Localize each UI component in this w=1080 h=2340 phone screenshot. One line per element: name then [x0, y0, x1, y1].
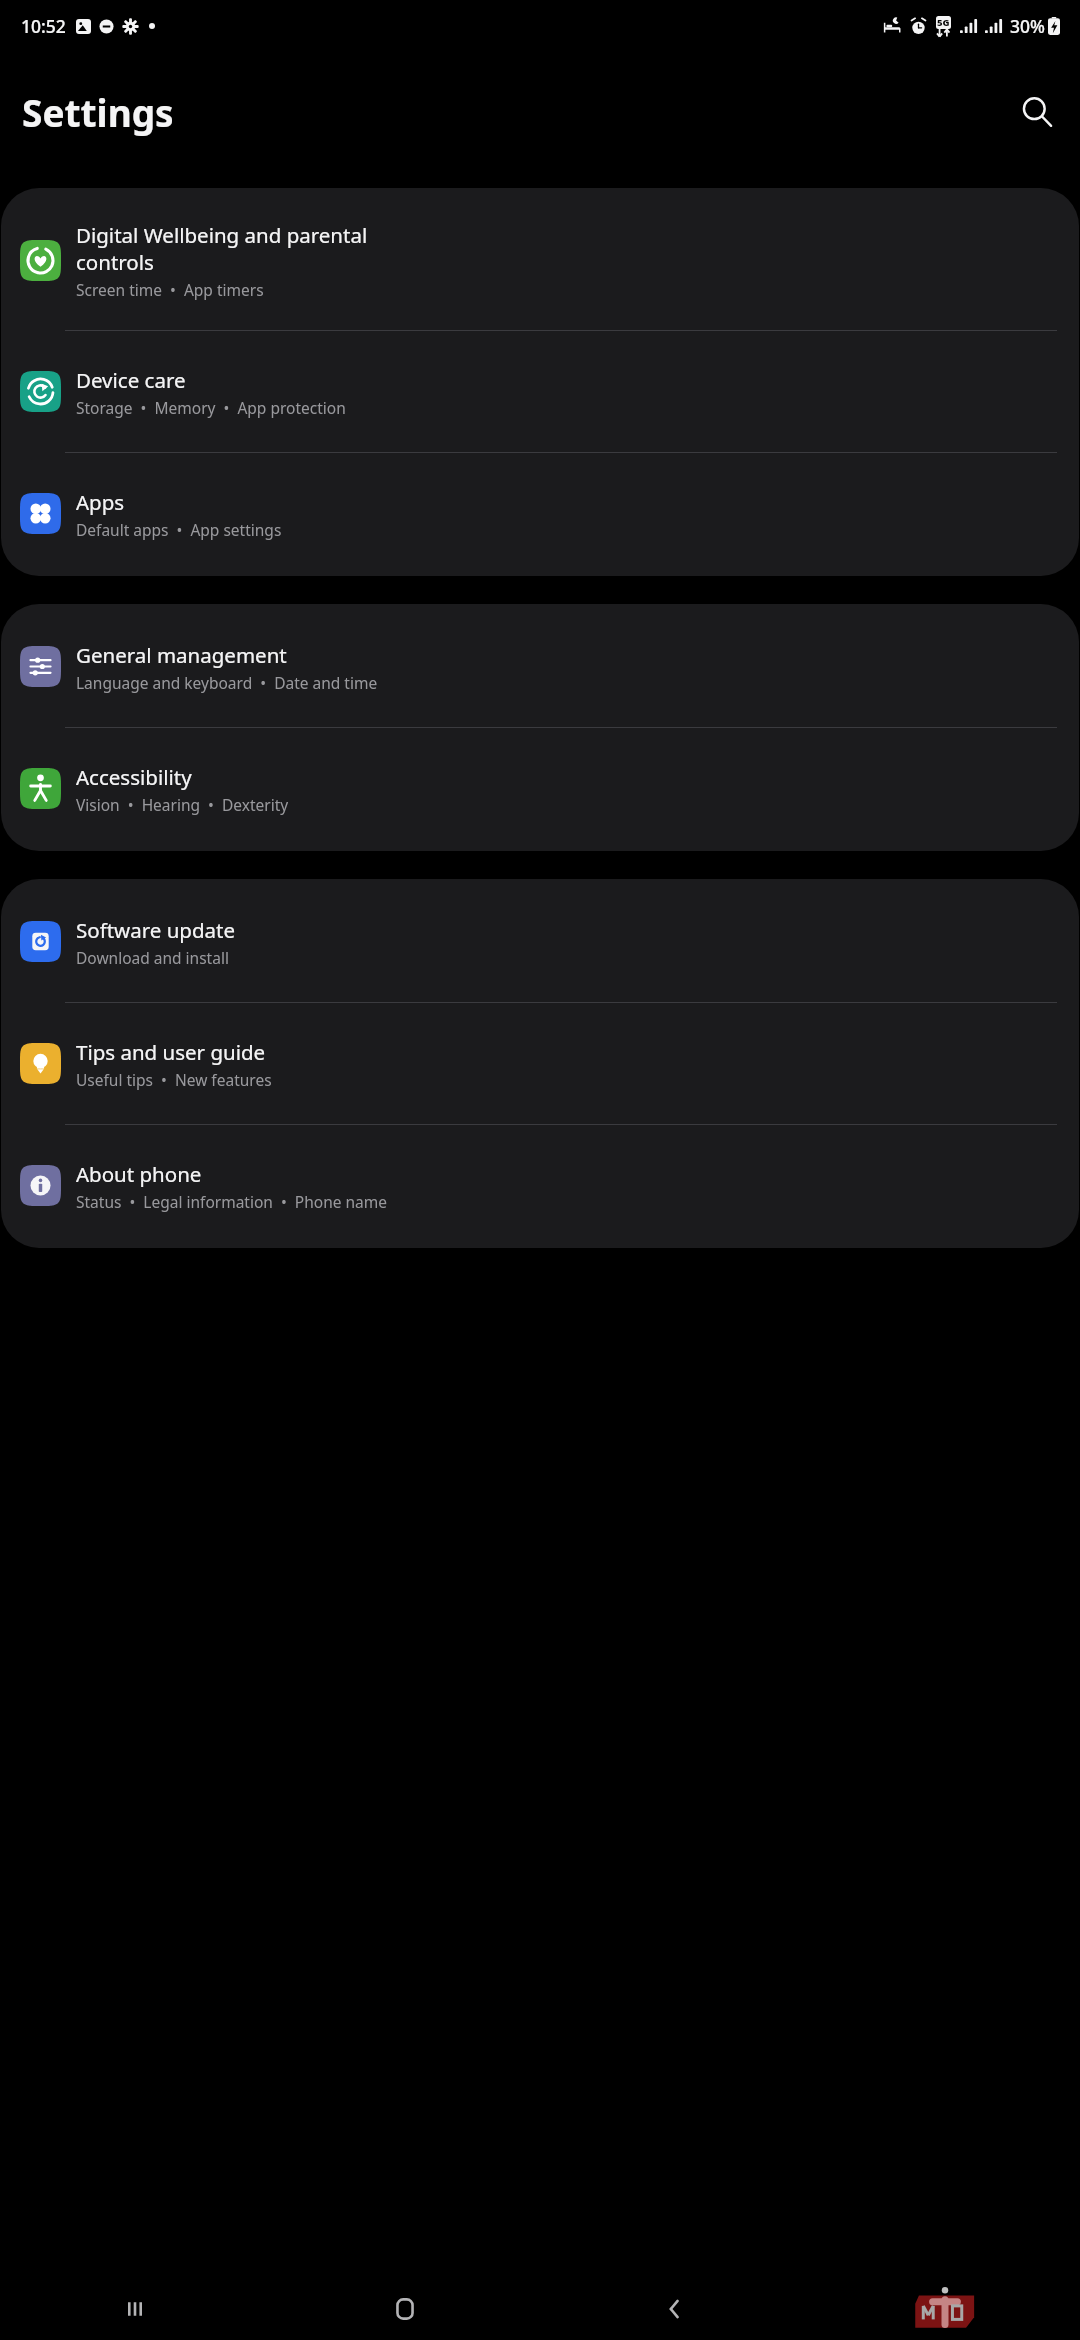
button[interactable]: Device care [1, 331, 1079, 452]
button[interactable]: General management [1, 606, 1079, 727]
staticText: About phone [76, 1160, 202, 1188]
staticText: Vision • Hearing • Dexterity [76, 794, 289, 815]
staticText: 30% [1010, 14, 1045, 38]
button[interactable]: Software update [1, 881, 1079, 1002]
staticText: Useful tips • New features [76, 1069, 272, 1090]
staticText: Device care [76, 366, 186, 394]
staticText: 10:52 [21, 14, 66, 38]
staticText: Tips and user guide [76, 1038, 266, 1066]
staticText: Default apps • App settings [76, 519, 282, 540]
staticText: Language and keyboard • Date and time [76, 672, 378, 693]
staticText: Storage • Memory • App protection [76, 397, 346, 418]
button[interactable]: Back [540, 2278, 810, 2340]
staticText: Settings [22, 87, 174, 137]
staticText: Software update [76, 916, 236, 944]
staticText: Download and install [76, 947, 229, 968]
button[interactable]: Accessibility [1, 728, 1079, 849]
staticText: Digital Wellbeing and parental controls [76, 221, 368, 276]
button[interactable]: Home [270, 2278, 540, 2340]
button[interactable]: Apps [1, 453, 1079, 574]
button[interactable]: Recents [0, 2278, 270, 2340]
staticText: Accessibility [76, 763, 192, 791]
staticText: 5G [937, 16, 950, 29]
staticText: Status • Legal information • Phone name [76, 1191, 388, 1212]
button[interactable]: Tips and user guide [1, 1003, 1079, 1124]
staticText: Apps [76, 488, 125, 516]
staticText: General management [76, 641, 287, 669]
button[interactable]: About phone [1, 1125, 1079, 1246]
button[interactable]: Search [1008, 83, 1066, 141]
staticText: Screen time • App timers [76, 279, 264, 300]
button[interactable]: Digital Wellbeing and parental controls [1, 190, 1079, 330]
